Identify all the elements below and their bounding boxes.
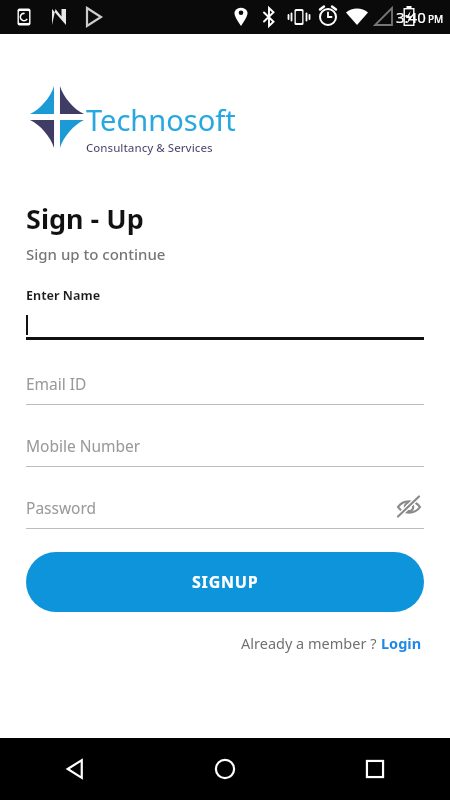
button[interactable]: SIGNUP xyxy=(26,552,424,612)
button[interactable]: Home xyxy=(150,738,300,800)
staticText: PM xyxy=(428,12,444,26)
button[interactable]: Show password xyxy=(394,492,424,522)
staticText: Consultancy & Services xyxy=(86,140,213,156)
button[interactable]: Mobile Number xyxy=(26,429,424,467)
button[interactable]: Back xyxy=(0,738,150,800)
staticText: Technosoft xyxy=(86,100,236,139)
staticText: Password xyxy=(26,497,97,518)
staticText: Already a member ? xyxy=(241,633,381,653)
button[interactable]: Password xyxy=(26,491,424,529)
staticText: Enter Name xyxy=(26,287,101,304)
staticText: Sign up to continue xyxy=(26,244,166,264)
button[interactable]: Email ID xyxy=(26,367,424,405)
staticText: Login xyxy=(381,633,422,653)
staticText: Email ID xyxy=(26,373,87,394)
button[interactable] xyxy=(26,304,424,340)
staticText: Sign - Up xyxy=(26,200,144,237)
staticText: 3:40 xyxy=(396,7,426,27)
staticText: SIGNUP xyxy=(192,571,259,593)
staticText: Mobile Number xyxy=(26,435,141,456)
button[interactable]: Login xyxy=(381,633,422,653)
button[interactable]: Recent apps xyxy=(300,738,450,800)
